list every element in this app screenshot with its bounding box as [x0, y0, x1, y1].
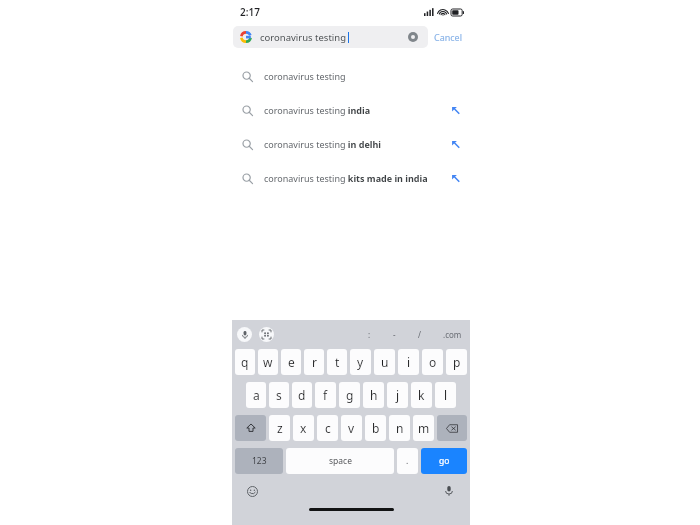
button[interactable]: u [374, 349, 395, 375]
button[interactable]: 123 [235, 448, 283, 474]
button[interactable]: Cancel [428, 31, 469, 43]
button[interactable]: - [392, 329, 397, 340]
staticText: go [439, 455, 450, 467]
staticText: p [453, 354, 461, 370]
staticText: : [368, 329, 371, 340]
button[interactable]: d [292, 382, 312, 408]
staticText: o [429, 354, 437, 370]
staticText: coronavirus testing in delhi [264, 138, 381, 150]
staticText: a [253, 387, 260, 403]
staticText: 2:17 [240, 5, 260, 19]
staticText: coronavirus testing india [264, 104, 371, 116]
button[interactable]: r [304, 349, 324, 375]
button[interactable]: .com [442, 329, 463, 340]
staticText: x [300, 420, 307, 436]
staticText: h [370, 387, 378, 403]
button[interactable]: q [235, 349, 255, 375]
button[interactable]: w [258, 349, 278, 375]
staticText: u [381, 354, 389, 370]
button[interactable]: o [422, 349, 443, 375]
staticText: space [329, 455, 352, 467]
staticText: Cancel [434, 31, 463, 43]
button[interactable]: l [435, 382, 456, 408]
button[interactable]: s [269, 382, 289, 408]
button[interactable]: coronavirus testing [232, 59, 470, 93]
staticText: m [418, 420, 430, 436]
button[interactable]: coronavirus testing india [232, 93, 470, 127]
button[interactable]: x [293, 415, 314, 441]
staticText: 123 [252, 455, 267, 467]
button[interactable]: g [339, 382, 360, 408]
button[interactable]: m [413, 415, 434, 441]
staticText: f [323, 387, 328, 403]
button[interactable]: . [397, 448, 418, 474]
button[interactable]: Shift [235, 415, 266, 441]
staticText: t [335, 354, 340, 370]
button[interactable]: coronavirus testing kits made in india [232, 161, 470, 195]
staticText: w [263, 354, 273, 370]
button[interactable]: Backspace [437, 415, 467, 441]
staticText: k [418, 387, 425, 403]
button[interactable]: / [417, 329, 422, 340]
staticText: n [396, 420, 404, 436]
button[interactable]: coronavirus testing in delhi [232, 127, 470, 161]
staticText: coronavirus testing [264, 70, 346, 82]
staticText: r [312, 354, 317, 370]
button[interactable]: Voice input [237, 327, 252, 342]
staticText: coronavirus testing kits made in india [264, 172, 428, 184]
button[interactable]: Scan [259, 327, 274, 342]
button[interactable]: Clear [405, 29, 421, 45]
button[interactable]: i [398, 349, 419, 375]
button[interactable]: Insert suggestion [448, 103, 462, 117]
button[interactable]: go [421, 448, 467, 474]
staticText: g [346, 387, 354, 403]
button[interactable]: coronavirus testing [233, 26, 428, 48]
button[interactable]: j [387, 382, 408, 408]
button[interactable]: c [317, 415, 338, 441]
button[interactable]: p [446, 349, 467, 375]
staticText: y [357, 354, 364, 370]
staticText: c [325, 420, 331, 436]
button[interactable]: a [246, 382, 266, 408]
staticText: l [444, 387, 448, 403]
staticText: d [298, 387, 306, 403]
button[interactable]: Insert suggestion [448, 171, 462, 185]
staticText: b [372, 420, 380, 436]
button[interactable]: y [350, 349, 371, 375]
staticText: .com [443, 329, 462, 340]
button[interactable]: k [411, 382, 432, 408]
button[interactable]: v [341, 415, 362, 441]
button[interactable]: e [281, 349, 301, 375]
staticText: z [277, 420, 283, 436]
button[interactable]: Insert suggestion [448, 137, 462, 151]
button[interactable]: Dictate [442, 484, 456, 498]
staticText: j [396, 387, 400, 403]
staticText: - [393, 329, 396, 340]
staticText: v [348, 420, 355, 436]
button[interactable]: h [363, 382, 384, 408]
button[interactable]: Emoji [245, 484, 259, 498]
button[interactable]: space [286, 448, 394, 474]
staticText: q [241, 354, 249, 370]
staticText: . [406, 455, 409, 467]
button[interactable]: b [365, 415, 386, 441]
button[interactable]: z [269, 415, 290, 441]
staticText: coronavirus testing [260, 31, 347, 44]
staticText: e [288, 354, 295, 370]
staticText: i [407, 354, 411, 370]
button[interactable]: n [389, 415, 410, 441]
button[interactable]: : [367, 329, 372, 340]
button[interactable]: f [315, 382, 336, 408]
staticText: s [276, 387, 282, 403]
button[interactable]: t [327, 349, 347, 375]
staticText: / [418, 329, 421, 340]
